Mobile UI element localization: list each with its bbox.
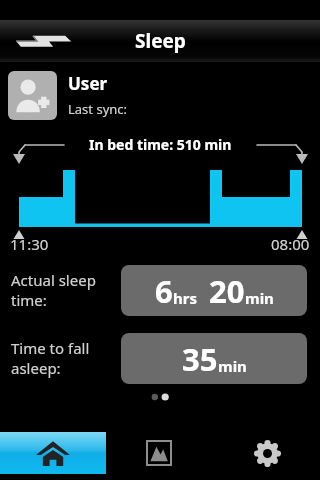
button[interactable]: Actual sleep time:: [0, 264, 320, 316]
staticText: 6: [155, 270, 173, 312]
button[interactable]: Gallery: [136, 432, 182, 474]
staticText: Actual sleep time:: [11, 270, 121, 310]
staticText: 35: [182, 338, 218, 380]
staticText: hrs: [173, 288, 197, 308]
button[interactable]: Time to fall asleep:: [0, 332, 320, 384]
staticText: 20: [209, 270, 245, 312]
staticText: 08:00: [271, 234, 310, 254]
staticText: min: [218, 356, 247, 376]
staticText: In bed time: 510 min: [89, 135, 232, 154]
button[interactable]: Settings: [244, 432, 290, 474]
other: App logo: [13, 29, 73, 53]
staticText: min: [245, 288, 274, 308]
staticText: 11:30: [10, 234, 49, 254]
button[interactable]: Home: [0, 432, 106, 474]
button[interactable]: User: [0, 67, 320, 127]
staticText: Sleep: [135, 28, 186, 54]
staticText: Time to fall asleep:: [11, 338, 121, 378]
staticText: User: [68, 72, 108, 95]
staticText: Last sync:: [68, 100, 128, 118]
